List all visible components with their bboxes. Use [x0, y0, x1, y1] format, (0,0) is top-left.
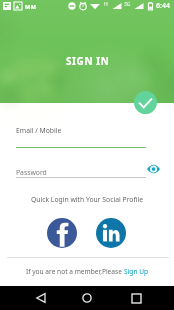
button[interactable]: Back	[29, 286, 53, 310]
button[interactable]: Recents	[124, 286, 148, 310]
button[interactable]: Sign in with LinkedIn	[96, 218, 126, 248]
button[interactable]: Sign Up	[124, 267, 149, 276]
staticText: If you are not a member,Please	[26, 267, 124, 276]
staticText: 6:44	[156, 1, 170, 11]
staticText: Email / Mobile	[16, 126, 62, 135]
button[interactable]: Sign in with Facebook	[47, 218, 77, 248]
button[interactable]: Show password	[145, 161, 161, 177]
button[interactable]: Submit	[134, 91, 157, 114]
staticText: Quick Login with Your Social Profile	[0, 195, 174, 204]
staticText: ᴍᴍ	[25, 2, 37, 12]
staticText: SIGN IN	[66, 54, 110, 68]
staticText: H	[104, 1, 108, 8]
staticText: Password	[16, 168, 47, 177]
staticText: 3G	[124, 1, 131, 8]
button[interactable]: Home	[75, 286, 99, 310]
